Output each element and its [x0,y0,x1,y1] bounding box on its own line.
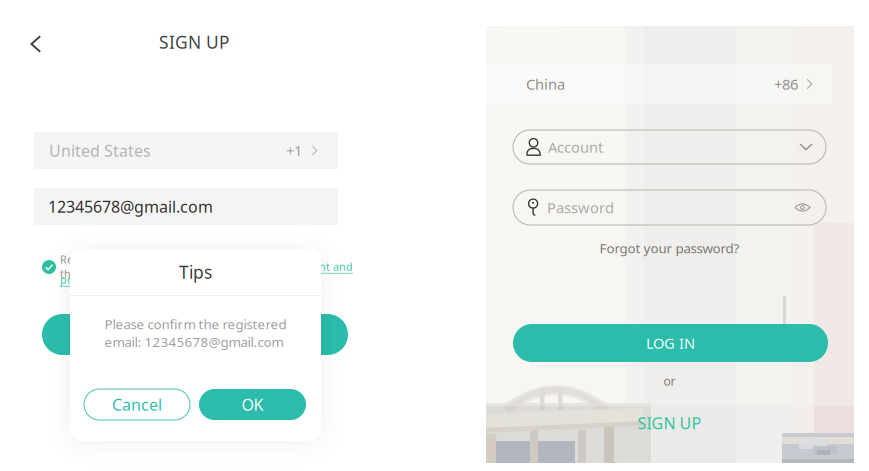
staticText: Account [548,137,603,157]
button[interactable]: Account [513,130,826,164]
button[interactable]: Back [14,24,58,64]
staticText: Cancel [112,394,162,415]
staticText: LOG IN [646,333,695,353]
staticText: user agreement and [249,259,353,274]
button[interactable]: Register [42,314,348,355]
staticText: Registration means that you agree to the [60,252,249,281]
button[interactable]: OK [199,389,306,420]
staticText: Register [161,323,228,346]
staticText: SIGN UP [159,30,229,53]
staticText: United States [49,140,151,161]
staticText: OK [241,394,263,415]
button[interactable]: 12345678@gmail.com [34,188,338,225]
staticText: Forgot your password? [599,239,739,257]
button[interactable]: Password [513,190,826,225]
button[interactable]: Cancel [84,389,190,420]
staticText: +86 [774,74,798,94]
staticText: or [663,373,675,389]
button[interactable]: LOG IN [513,324,828,362]
button[interactable]: Agree to terms [42,260,56,274]
staticText: SIGN UP [637,412,701,434]
staticText: Please confirm the registered email: 123… [104,315,286,351]
button[interactable]: Forgot your password? [513,239,826,257]
staticText: +1 [286,141,302,160]
staticText: Password [547,198,614,217]
staticText: China [526,74,565,94]
button[interactable]: SIGN UP [513,412,826,434]
button[interactable]: China [513,66,826,102]
button[interactable]: United States [34,132,338,169]
staticText: 12345678@gmail.com [48,196,213,217]
staticText: Tips [179,260,212,283]
staticText: privacy policy [60,272,127,287]
